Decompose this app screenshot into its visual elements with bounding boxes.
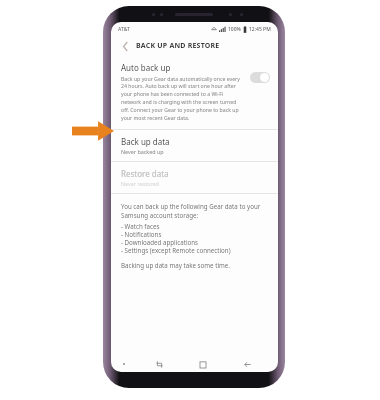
staticText: - Settings (except Remote connection)	[121, 246, 231, 254]
staticText: BACK UP AND RESTORE	[136, 41, 220, 51]
staticText: 12:45 PM	[249, 26, 271, 33]
button[interactable]: Back	[225, 356, 269, 372]
staticText: Back up your Gear data automatically onc…	[121, 75, 244, 121]
staticText: Auto back up	[121, 62, 171, 73]
button[interactable]: Back up data	[111, 130, 278, 161]
button[interactable]: Back	[117, 38, 133, 54]
button[interactable]: Auto back up	[111, 56, 278, 129]
button[interactable]: Recents	[137, 356, 181, 372]
staticText: - Notifications	[121, 230, 162, 238]
staticText: Never restored	[121, 180, 159, 187]
staticText: - Downloaded applications	[121, 238, 199, 246]
staticText: 100%	[228, 26, 241, 33]
staticText: Never backed up	[121, 148, 164, 155]
button[interactable]: Home	[181, 356, 225, 372]
button[interactable]: Indicator	[111, 356, 137, 372]
staticText: - Watch faces	[121, 222, 160, 230]
staticText: AT&T	[118, 26, 130, 33]
staticText: You can back up the following Gear data …	[121, 202, 270, 220]
button[interactable]: Auto back up toggle	[250, 72, 270, 83]
button[interactable]: Restore data	[111, 162, 278, 193]
staticText: Back up data	[121, 136, 170, 147]
staticText: Restore data	[121, 168, 169, 179]
staticText: Backing up data may take some time.	[121, 261, 230, 269]
